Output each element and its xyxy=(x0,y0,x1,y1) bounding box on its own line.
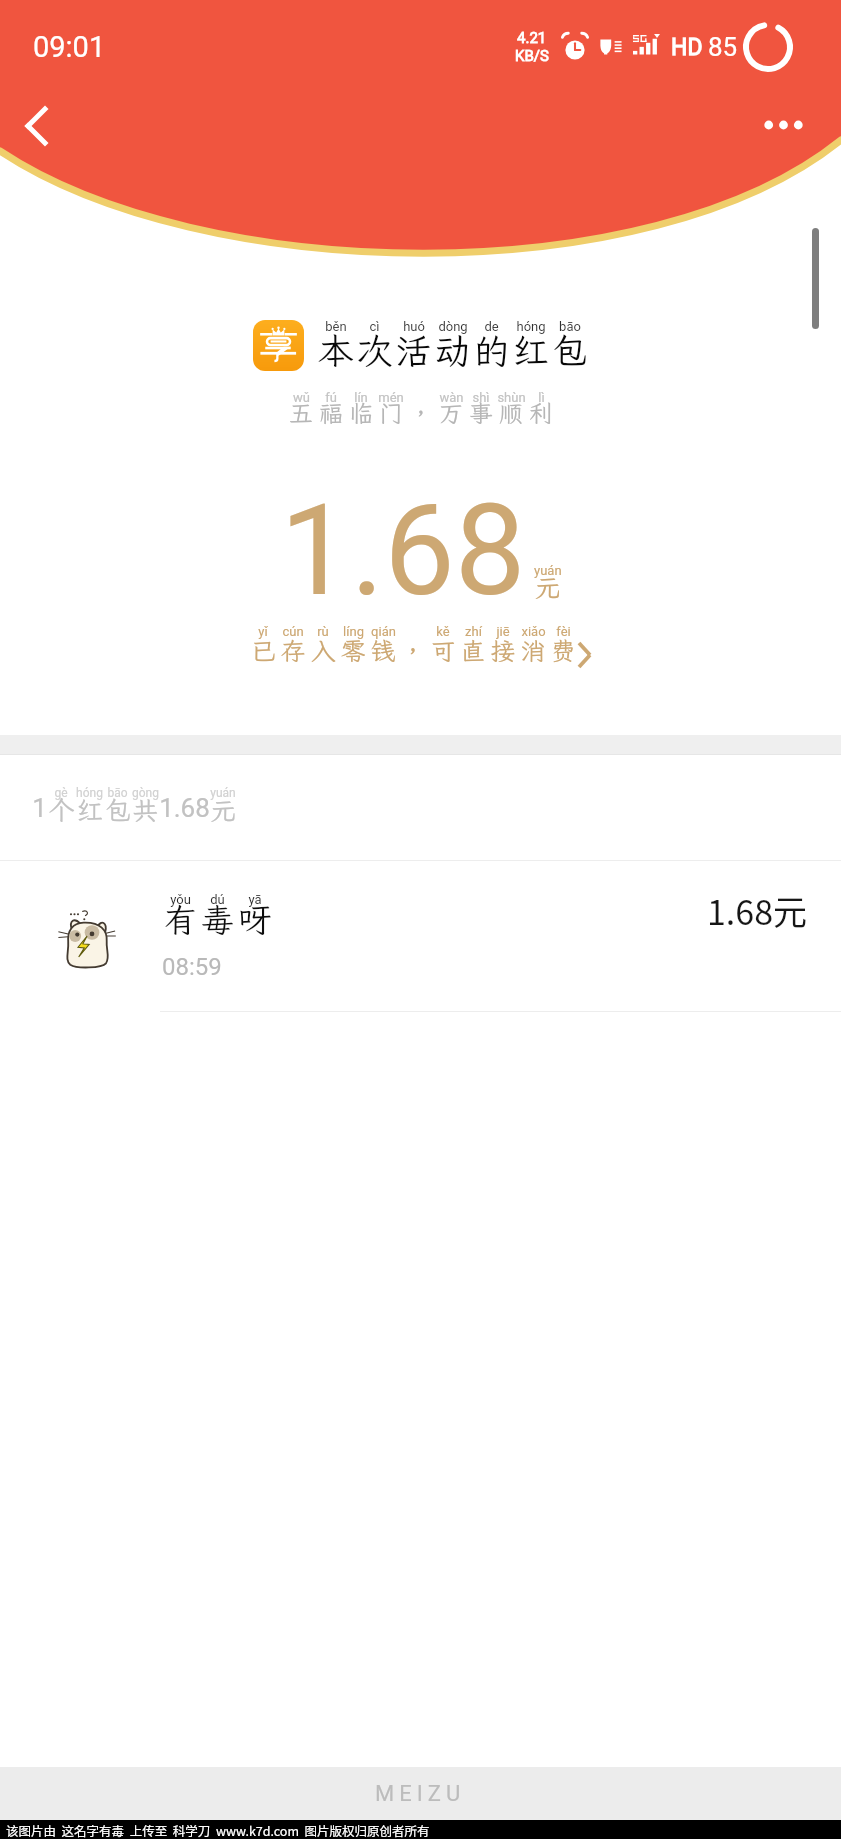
staticText: 1.68 xyxy=(280,477,526,625)
staticText: yǐ xyxy=(258,624,268,639)
staticText: de xyxy=(484,319,499,334)
staticText: zhí xyxy=(465,624,482,639)
staticText: 个 xyxy=(48,793,75,827)
staticText: 消 xyxy=(520,634,546,667)
staticText: 费 xyxy=(550,634,576,667)
staticText: 利 xyxy=(529,397,553,429)
staticText: 可 xyxy=(430,634,456,667)
staticText: ， xyxy=(409,397,433,429)
staticText: fèi xyxy=(556,624,571,639)
staticText: mén xyxy=(378,390,404,405)
staticText: 顺 xyxy=(499,397,523,429)
staticText: líng xyxy=(343,624,364,639)
staticText: 包 xyxy=(551,327,588,374)
staticText: rù xyxy=(317,624,329,639)
staticText: dòng xyxy=(438,319,468,334)
button[interactable]: Back xyxy=(0,90,74,164)
staticText: 1 xyxy=(32,793,47,823)
staticText: 次 xyxy=(356,327,393,374)
staticText: 本 xyxy=(317,327,354,374)
staticText: HD xyxy=(671,34,703,61)
staticText: 万 xyxy=(439,397,463,429)
staticText: yuán xyxy=(210,786,236,800)
staticText: bāo xyxy=(559,319,581,334)
staticText: dú xyxy=(210,892,225,907)
staticText: 的 xyxy=(473,327,510,374)
staticText: kě xyxy=(436,624,450,639)
staticText: 门 xyxy=(379,397,403,429)
staticText: qián xyxy=(371,624,396,639)
staticText: hóng xyxy=(516,319,546,334)
staticText: gòng xyxy=(132,786,159,800)
staticText: gè xyxy=(54,786,68,800)
staticText: yǒu xyxy=(170,892,191,907)
staticText: shì xyxy=(472,390,490,405)
staticText: 元 xyxy=(535,570,562,604)
staticText: bāo xyxy=(107,786,128,800)
button[interactable]: yǒu xyxy=(0,861,841,1011)
staticText: wǔ xyxy=(293,390,310,405)
staticText: jiē xyxy=(496,624,510,639)
staticText: 五 xyxy=(289,397,313,429)
staticText: 存 xyxy=(280,634,306,667)
staticText: 动 xyxy=(434,327,471,374)
staticText: 已 xyxy=(250,634,276,667)
button[interactable]: More options xyxy=(761,90,835,164)
staticText: 1.68元 xyxy=(707,886,808,935)
staticText: wàn xyxy=(439,390,464,405)
staticText: 临 xyxy=(349,397,373,429)
staticText: 08:59 xyxy=(162,953,222,981)
staticText: hóng xyxy=(76,786,103,800)
staticText: 红 xyxy=(76,793,103,827)
staticText: 有 xyxy=(164,898,197,941)
staticText: 该图片由 这名字有毒 上传至 科学刀 www.k7d.com 图片版权归原创者所… xyxy=(6,1821,430,1839)
staticText: 包 xyxy=(104,793,131,827)
staticText: 接 xyxy=(490,634,516,667)
staticText: 红 xyxy=(512,327,549,374)
staticText: cún xyxy=(282,624,304,639)
staticText: 85 xyxy=(708,32,738,62)
staticText: 事 xyxy=(469,397,493,429)
staticText: 4.21 xyxy=(517,29,547,47)
staticText: 09:01 xyxy=(33,30,106,64)
button[interactable]: yǐ xyxy=(0,624,841,672)
staticText: 入 xyxy=(310,634,336,667)
staticText: 毒 xyxy=(201,898,234,941)
staticText: 钱 xyxy=(370,634,396,667)
staticText: fú xyxy=(325,390,337,405)
staticText: běn xyxy=(325,319,347,334)
staticText: shùn xyxy=(497,390,526,405)
staticText: 福 xyxy=(319,397,343,429)
staticText: 活 xyxy=(395,327,432,374)
staticText: lín xyxy=(354,390,368,405)
staticText: 呀 xyxy=(238,898,271,941)
staticText: 元 xyxy=(210,793,237,827)
staticText: xiǎo xyxy=(521,624,546,639)
staticText: huó xyxy=(403,319,425,334)
staticText: ， xyxy=(400,634,426,667)
staticText: yā xyxy=(248,892,262,907)
staticText: lì xyxy=(538,390,545,405)
staticText: 共 xyxy=(132,793,159,827)
staticText: MEIZU xyxy=(375,1781,466,1807)
staticText: cì xyxy=(369,319,380,334)
staticText: KB/S xyxy=(515,47,549,65)
staticText: 直 xyxy=(460,634,486,667)
staticText: 1.68 xyxy=(159,793,209,823)
staticText: yuán xyxy=(534,563,562,578)
staticText: 零 xyxy=(340,634,366,667)
